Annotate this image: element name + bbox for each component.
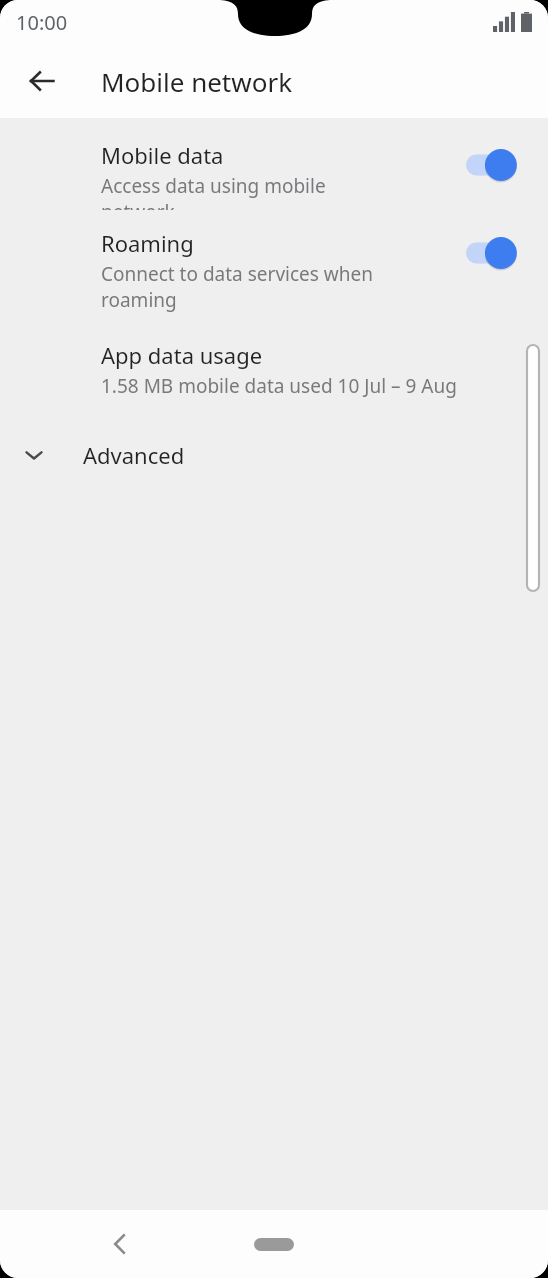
button[interactable]: Roaming: [0, 210, 548, 326]
staticText: Roaming: [101, 228, 194, 258]
button[interactable]: Home: [238, 1227, 310, 1261]
button[interactable]: Back: [18, 57, 66, 105]
staticText: Mobile data: [101, 140, 224, 170]
staticText: 1.58 MB mobile data used 10 Jul – 9 Aug: [101, 373, 457, 399]
button[interactable]: App data usage: [0, 326, 548, 418]
button[interactable]: Mobile data toggle: [466, 148, 522, 182]
staticText: Access data using mobile network: [101, 173, 386, 210]
button[interactable]: Advanced: [0, 418, 548, 492]
staticText: Advanced: [83, 440, 185, 470]
button[interactable]: Roaming toggle: [466, 236, 522, 270]
button[interactable]: Back: [92, 1216, 148, 1272]
staticText: App data usage: [101, 340, 263, 370]
staticText: Mobile network: [101, 64, 293, 99]
button[interactable]: Mobile data: [0, 118, 548, 210]
staticText: Connect to data services when roaming: [101, 261, 386, 312]
staticText: 10:00: [16, 9, 68, 36]
